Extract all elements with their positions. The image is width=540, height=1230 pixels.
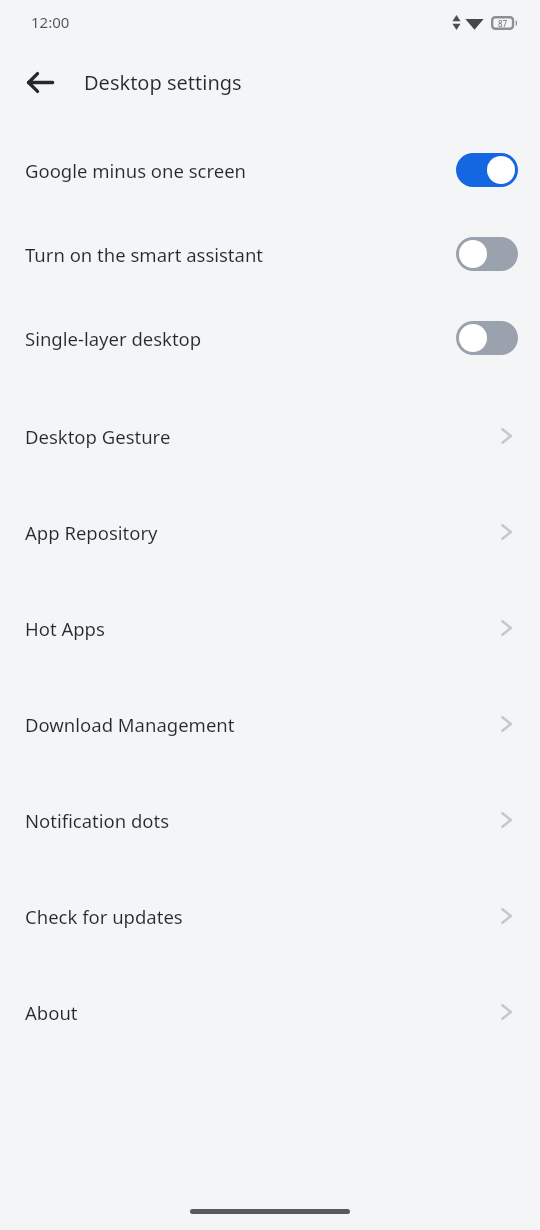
button[interactable]: Notification dots [0, 772, 540, 868]
staticText: Desktop settings [84, 69, 242, 96]
button[interactable]: Google minus one screen [0, 128, 540, 212]
staticText: Google minus one screen [25, 158, 456, 183]
staticText: 87 [498, 18, 508, 29]
button[interactable]: About [0, 964, 540, 1060]
staticText: Turn on the smart assistant [25, 242, 456, 267]
button[interactable]: Hot Apps [0, 580, 540, 676]
button[interactable]: Check for updates [0, 868, 540, 964]
button[interactable]: Single-layer desktop [0, 296, 540, 380]
staticText: Desktop Gesture [25, 424, 498, 449]
staticText: About [25, 1000, 498, 1025]
staticText: Hot Apps [25, 616, 498, 641]
staticText: Notification dots [25, 808, 498, 833]
button[interactable]: Back [10, 52, 70, 112]
staticText: Check for updates [25, 904, 498, 929]
button[interactable]: Download Management [0, 676, 540, 772]
button[interactable]: Turn on the smart assistant [0, 212, 540, 296]
button[interactable]: Desktop Gesture [0, 388, 540, 484]
staticText: Download Management [25, 712, 498, 737]
button[interactable]: App Repository [0, 484, 540, 580]
staticText: Single-layer desktop [25, 326, 456, 351]
staticText: 12:00 [31, 12, 70, 32]
staticText: App Repository [25, 520, 498, 545]
